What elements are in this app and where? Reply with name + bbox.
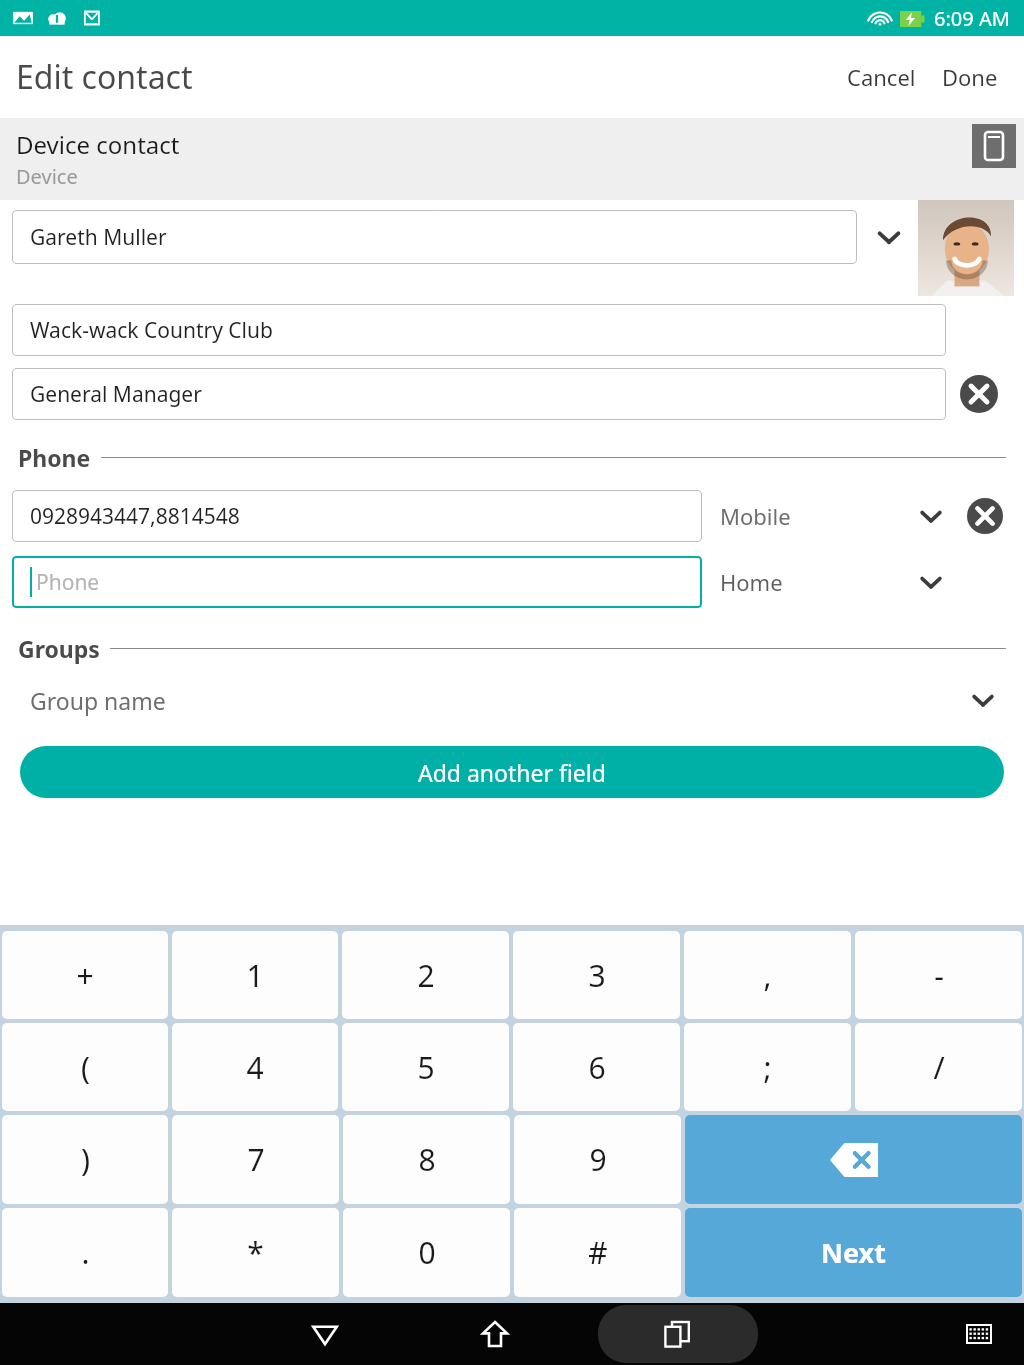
button[interactable]: Contact photo: [918, 200, 1014, 296]
button[interactable]: Phone type: [904, 489, 958, 543]
button[interactable]: 2: [342, 931, 509, 1019]
button[interactable]: -: [855, 931, 1022, 1019]
button[interactable]: Recent apps: [598, 1305, 758, 1363]
staticText: 1: [246, 955, 264, 996]
button[interactable]: Remove phone: [958, 489, 1012, 543]
button[interactable]: 1: [172, 931, 338, 1019]
staticText: #: [588, 1232, 608, 1273]
staticText: 6: [588, 1047, 606, 1088]
button[interactable]: +: [2, 931, 168, 1019]
staticText: +: [76, 955, 94, 996]
button[interactable]: Clear title: [946, 368, 1012, 420]
staticText: Device: [16, 163, 78, 190]
staticText: 2: [417, 955, 435, 996]
button[interactable]: Device contact: [0, 118, 1024, 200]
button[interactable]: ,: [684, 931, 851, 1019]
staticText: Done: [942, 62, 998, 92]
staticText: (: [81, 1047, 90, 1088]
staticText: Next: [821, 1234, 886, 1271]
button[interactable]: 9: [514, 1115, 681, 1204]
staticText: Mobile: [720, 501, 791, 531]
staticText: 5: [417, 1047, 435, 1088]
button[interactable]: #: [514, 1208, 681, 1297]
button[interactable]: Home: [460, 1303, 530, 1365]
staticText: 6:09 AM: [934, 5, 1010, 32]
staticText: Cancel: [847, 62, 916, 92]
button[interactable]: (: [2, 1023, 168, 1111]
button[interactable]: Gareth Muller: [12, 210, 857, 264]
button[interactable]: /: [855, 1023, 1022, 1111]
button[interactable]: Cancel: [837, 52, 926, 102]
button[interactable]: Next: [685, 1208, 1022, 1297]
staticText: /: [933, 1047, 945, 1088]
button[interactable]: Device storage: [972, 124, 1016, 168]
staticText: ): [81, 1139, 90, 1180]
button[interactable]: Hide keyboard: [944, 1303, 1014, 1365]
staticText: Gareth Muller: [30, 223, 167, 252]
button[interactable]: *: [172, 1208, 339, 1297]
button[interactable]: 8: [343, 1115, 510, 1204]
button[interactable]: 3: [513, 931, 680, 1019]
staticText: -: [934, 955, 944, 996]
staticText: Phone: [18, 442, 91, 473]
staticText: 3: [588, 955, 606, 996]
button[interactable]: 0928943447,8814548: [12, 490, 702, 542]
button[interactable]: .: [2, 1208, 168, 1297]
staticText: Wack-wack Country Club: [30, 316, 273, 345]
button[interactable]: Back: [290, 1303, 360, 1365]
staticText: *: [247, 1232, 264, 1273]
button[interactable]: 5: [342, 1023, 509, 1111]
staticText: General Manager: [30, 380, 202, 409]
button[interactable]: ): [2, 1115, 168, 1204]
button[interactable]: Expand name: [857, 210, 921, 264]
button[interactable]: ;: [684, 1023, 851, 1111]
staticText: ;: [763, 1047, 772, 1088]
button[interactable]: 6: [513, 1023, 680, 1111]
staticText: 4: [246, 1047, 264, 1088]
staticText: Groups: [18, 633, 100, 664]
staticText: ,: [763, 955, 772, 996]
button[interactable]: 4: [172, 1023, 338, 1111]
staticText: 7: [247, 1139, 265, 1180]
button[interactable]: Group name: [0, 672, 1024, 728]
staticText: 0928943447,8814548: [30, 502, 240, 531]
staticText: Phone: [36, 568, 100, 597]
staticText: Device contact: [16, 128, 180, 161]
staticText: Group name: [30, 685, 166, 716]
button[interactable]: Phone type: [904, 555, 958, 609]
staticText: 0: [418, 1232, 436, 1273]
button[interactable]: Phone: [12, 556, 702, 608]
button[interactable]: Backspace: [685, 1115, 1022, 1204]
staticText: 9: [589, 1139, 607, 1180]
staticText: Add another field: [418, 757, 606, 788]
button[interactable]: Add another field: [20, 746, 1004, 798]
button[interactable]: Done: [932, 52, 1008, 102]
staticText: 8: [418, 1139, 436, 1180]
button[interactable]: General Manager: [12, 368, 946, 420]
staticText: Home: [720, 567, 783, 597]
button[interactable]: Wack-wack Country Club: [12, 304, 946, 356]
button[interactable]: 0: [343, 1208, 510, 1297]
staticText: .: [81, 1232, 90, 1273]
button[interactable]: 7: [172, 1115, 339, 1204]
staticText: Edit contact: [16, 55, 193, 99]
